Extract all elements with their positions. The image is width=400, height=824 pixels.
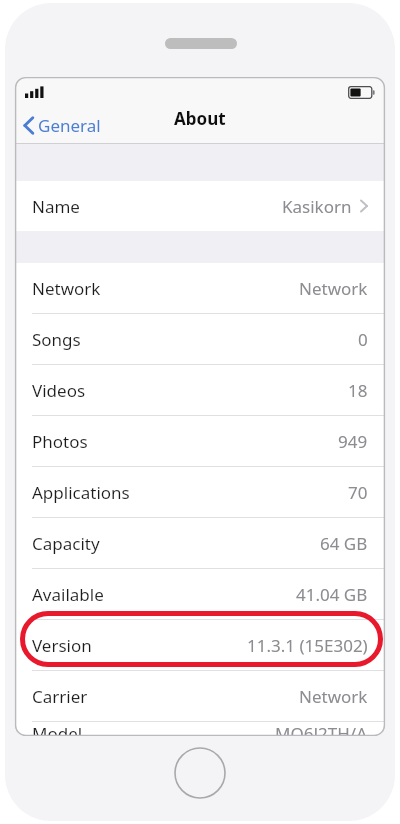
staticText: Network	[299, 277, 368, 300]
button[interactable]: Version	[15, 620, 385, 670]
button[interactable]: Carrier	[15, 671, 385, 721]
staticText: Network	[299, 685, 368, 708]
staticText: 64 GB	[320, 532, 368, 555]
staticText: 949	[338, 430, 368, 453]
staticText: Videos	[32, 379, 86, 402]
button[interactable]: Applications	[15, 467, 385, 517]
staticText: 41.04 GB	[296, 583, 368, 606]
staticText: 0	[358, 328, 368, 351]
button[interactable]: General	[19, 110, 105, 141]
staticText: Version	[32, 634, 92, 657]
button[interactable]: Available	[15, 569, 385, 619]
staticText: Applications	[32, 481, 130, 504]
staticText: Capacity	[32, 532, 100, 555]
button[interactable]: Photos	[15, 416, 385, 466]
staticText: Name	[32, 195, 80, 218]
button[interactable]: Videos	[15, 365, 385, 415]
staticText: 70	[348, 481, 368, 504]
staticText: 18	[348, 379, 368, 402]
staticText: General	[38, 114, 101, 137]
button[interactable]: Home	[174, 747, 226, 799]
staticText: About	[174, 107, 226, 130]
staticText: Songs	[32, 328, 81, 351]
staticText: MQ6J2TH/A	[275, 722, 368, 736]
staticText: Network	[32, 277, 101, 300]
staticText: Carrier	[32, 685, 88, 708]
staticText: Photos	[32, 430, 88, 453]
staticText: Model	[32, 722, 83, 736]
button[interactable]: Model	[15, 722, 385, 736]
button[interactable]: Network	[15, 263, 385, 313]
staticText: 11.3.1 (15E302)	[247, 634, 368, 657]
staticText: Kasikorn	[282, 195, 352, 218]
button[interactable]: Capacity	[15, 518, 385, 568]
button[interactable]: Name	[15, 181, 385, 231]
button[interactable]: Songs	[15, 314, 385, 364]
staticText: Available	[32, 583, 104, 606]
